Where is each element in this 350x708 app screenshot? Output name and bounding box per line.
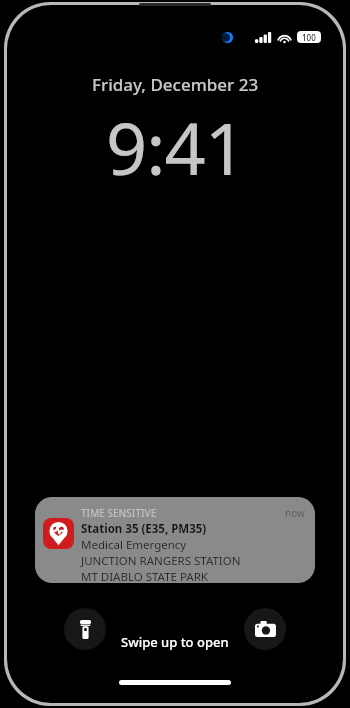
button[interactable]: Swipe up to open [111, 630, 239, 654]
staticText: 9:41 [106, 98, 245, 196]
button[interactable]: Flashlight [64, 608, 106, 650]
staticText: 100 [302, 32, 316, 43]
staticText: now [285, 506, 305, 520]
staticText: Station 35 (E35, PM35) [81, 521, 207, 537]
staticText: JUNCTION RANGERS STATION [81, 553, 241, 569]
staticText: MT DIABLO STATE PARK [81, 569, 208, 583]
staticText: Medical Emergency [81, 537, 187, 553]
staticText: Swipe up to open [121, 633, 229, 651]
button[interactable]: TIME SENSITIVE [35, 497, 315, 583]
button[interactable]: Camera [244, 608, 286, 650]
staticText: Friday, December 23 [92, 73, 259, 96]
staticText: TIME SENSITIVE [81, 506, 157, 520]
